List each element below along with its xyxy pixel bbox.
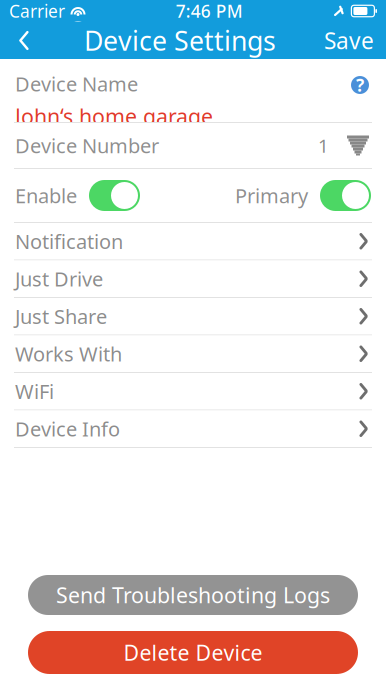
button[interactable]: Device Number (0, 123, 386, 168)
staticText: ? (356, 73, 364, 96)
button[interactable]: Back (0, 22, 48, 59)
staticText: Save (324, 25, 374, 55)
staticText: Works With (15, 340, 122, 367)
button[interactable]: Primary (235, 180, 371, 211)
staticText: 1 (318, 133, 329, 158)
staticText: Carrier (9, 0, 65, 22)
staticText: Device Info (15, 415, 120, 442)
button[interactable]: Works With (0, 335, 386, 372)
button[interactable]: Enable (15, 180, 140, 211)
staticText: Primary (235, 182, 308, 209)
button[interactable]: Just Share (0, 298, 386, 334)
staticText: Device Name (15, 71, 138, 97)
staticText: 7:46 PM (176, 0, 243, 22)
staticText: Send Troubleshooting Logs (56, 581, 330, 609)
staticText: John‘s home garage (15, 102, 213, 130)
staticText: WiFi (15, 378, 54, 405)
button[interactable]: Notification (0, 223, 386, 259)
button[interactable]: WiFi (0, 373, 386, 409)
staticText: Device Number (15, 132, 159, 159)
button[interactable]: Help (343, 68, 377, 102)
button[interactable]: Device Info (0, 410, 386, 447)
button[interactable]: Send Troubleshooting Logs (28, 575, 358, 615)
staticText: Delete Device (123, 638, 262, 667)
staticText: Enable (15, 182, 77, 209)
staticText: Notification (15, 228, 123, 255)
button[interactable]: Save (312, 22, 386, 59)
staticText: Just Share (15, 303, 107, 330)
button[interactable]: Just Drive (0, 260, 386, 297)
button[interactable]: Delete Device (28, 631, 358, 674)
staticText: Just Drive (15, 265, 103, 292)
staticText: Device Settings (84, 23, 276, 58)
